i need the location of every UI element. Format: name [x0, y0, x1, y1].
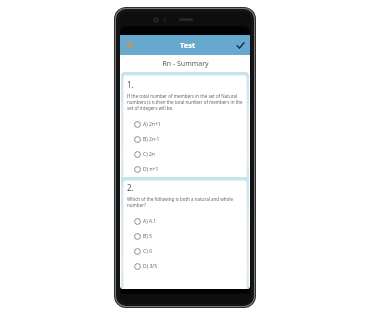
staticText: 2.: [127, 182, 134, 193]
staticText: A) 2n+1: [143, 121, 161, 128]
button[interactable]: B) 5: [127, 229, 243, 244]
button[interactable]: C) 0: [127, 244, 243, 259]
button[interactable]: A) 4.1: [127, 214, 243, 229]
staticText: D) n+1: [143, 166, 159, 173]
staticText: If the total number of members in the se…: [127, 93, 243, 111]
button[interactable]: D) 3/5: [127, 259, 243, 274]
staticText: A) 4.1: [143, 218, 157, 225]
staticText: B) 2n-1: [143, 136, 160, 143]
staticText: C) 0: [143, 248, 152, 255]
button[interactable]: D) n+1: [127, 162, 243, 177]
staticText: 1.: [127, 79, 134, 90]
button[interactable]: B) 2n-1: [127, 132, 243, 147]
staticText: Rn - Summary: [162, 59, 209, 69]
button[interactable]: C) 2n: [127, 147, 243, 162]
button[interactable]: Submit: [233, 38, 247, 52]
staticText: B) 5: [143, 233, 152, 240]
staticText: D) 3/5: [143, 263, 158, 270]
button[interactable]: Close: [123, 38, 137, 52]
staticText: C) 2n: [143, 151, 155, 158]
button[interactable]: 1.: [120, 72, 250, 182]
button[interactable]: 2.: [120, 177, 250, 289]
button[interactable]: A) 2n+1: [127, 117, 243, 132]
staticText: Test: [180, 40, 196, 50]
staticText: Which of the following is both a natural…: [127, 196, 243, 208]
